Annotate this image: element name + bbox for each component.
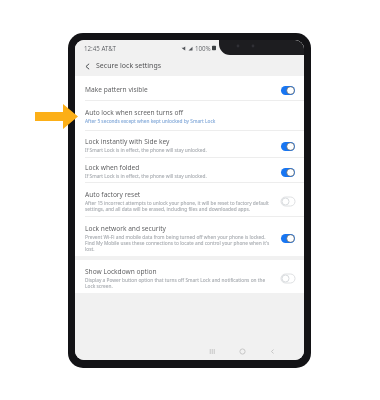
button[interactable]: Back xyxy=(268,347,277,356)
button[interactable]: Home xyxy=(238,347,247,356)
button[interactable]: Lock when folded xyxy=(75,158,304,182)
button[interactable]: Back xyxy=(83,62,92,71)
staticText: Secure lock settings xyxy=(96,61,162,71)
staticText: After 5 seconds except when kept unlocke… xyxy=(85,118,216,125)
staticText: Show Lockdown option xyxy=(85,267,157,276)
staticText: Display a Power button option that turns… xyxy=(85,277,276,289)
button[interactable]: Recents xyxy=(208,347,217,356)
button[interactable]: Auto factory reset xyxy=(75,183,304,216)
button[interactable]: Show Lockdown option xyxy=(75,260,304,293)
staticText: Lock instantly with Side key xyxy=(85,137,170,146)
staticText: Auto factory reset xyxy=(85,190,141,199)
staticText: After 15 incorrect attempts to unlock yo… xyxy=(85,200,276,212)
staticText: If Smart Lock is in effect, the phone wi… xyxy=(85,173,207,180)
staticText: Make pattern visible xyxy=(85,85,148,94)
staticText: If Smart Lock is in effect, the phone wi… xyxy=(85,147,207,154)
staticText: 12:45 AT&T xyxy=(84,44,116,52)
staticText: 100% xyxy=(195,44,211,52)
button[interactable]: Make pattern visible xyxy=(75,76,304,100)
button[interactable]: Auto lock when screen turns off xyxy=(75,101,304,130)
button[interactable]: Lock instantly with Side key xyxy=(75,131,304,157)
staticText: Lock network and security xyxy=(85,224,166,233)
staticText: Lock when folded xyxy=(85,163,140,172)
staticText: Prevent Wi-Fi and mobile data from being… xyxy=(85,234,276,252)
staticText: Auto lock when screen turns off xyxy=(85,108,184,117)
button[interactable]: Lock network and security xyxy=(75,217,304,256)
